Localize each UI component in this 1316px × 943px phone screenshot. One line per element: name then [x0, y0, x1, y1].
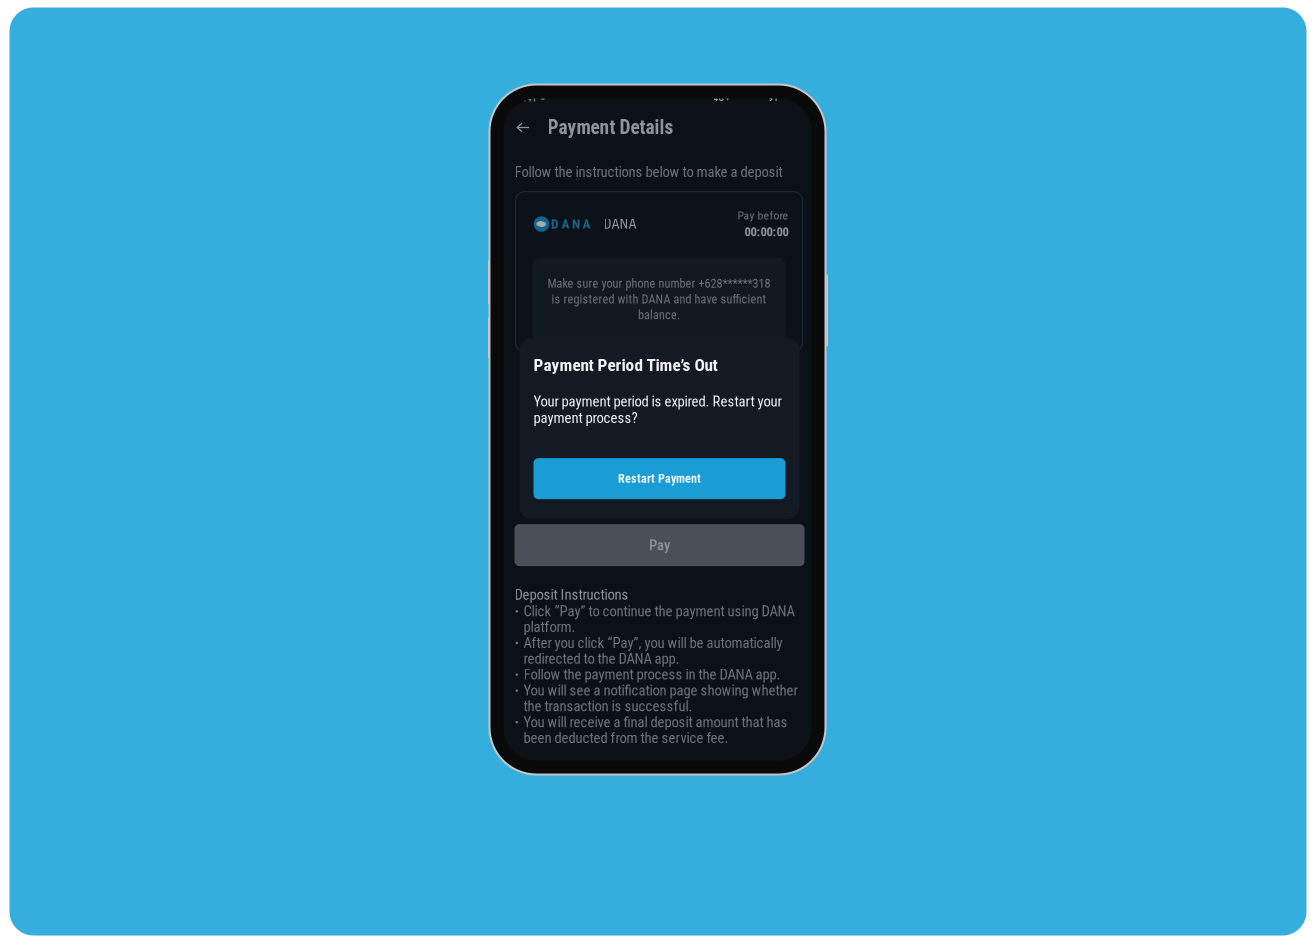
staticText: 4G: [713, 92, 723, 103]
staticText: Pay before: [737, 209, 788, 222]
staticText: DANA: [603, 216, 636, 232]
staticText: You will receive a final deposit amount …: [523, 714, 787, 746]
staticText: · · · ·: [750, 92, 764, 103]
staticText: D: [551, 216, 559, 232]
staticText: Payment Period Time’s Out: [533, 355, 717, 375]
button[interactable]: Restart Payment: [533, 458, 785, 499]
staticText: N: [572, 216, 580, 232]
staticText: is registered with DANA and have suffici…: [551, 292, 766, 306]
staticText: balance.: [638, 308, 680, 322]
staticText: Payment Details: [547, 116, 673, 139]
staticText: Follow the instructions below to make a …: [514, 163, 782, 181]
staticText: After you click “Pay”, you will be autom…: [523, 635, 782, 667]
staticText: Make sure your phone number +628******31…: [547, 276, 770, 291]
staticText: · · · ·: [733, 92, 747, 103]
staticText: Deposit Instructions: [514, 586, 628, 603]
staticText: Pay: [649, 537, 670, 554]
staticText: ▾: [725, 92, 729, 103]
staticText: 9:41: [518, 91, 536, 104]
staticText: Restart Payment: [618, 471, 701, 486]
staticText: A: [582, 216, 590, 232]
staticText: Follow the payment process in the DANA a…: [523, 667, 780, 682]
staticText: 91: [768, 92, 778, 103]
staticText: Your payment period is expired. Restart …: [533, 393, 781, 426]
staticText: Click “Pay” to continue the payment usin…: [523, 603, 794, 635]
button[interactable]: Back: [516, 112, 544, 142]
staticText: You will see a notification page showing…: [523, 683, 797, 714]
staticText: A: [561, 216, 569, 232]
button[interactable]: Pay: [514, 524, 804, 566]
staticText: 00:00:00: [744, 224, 788, 239]
